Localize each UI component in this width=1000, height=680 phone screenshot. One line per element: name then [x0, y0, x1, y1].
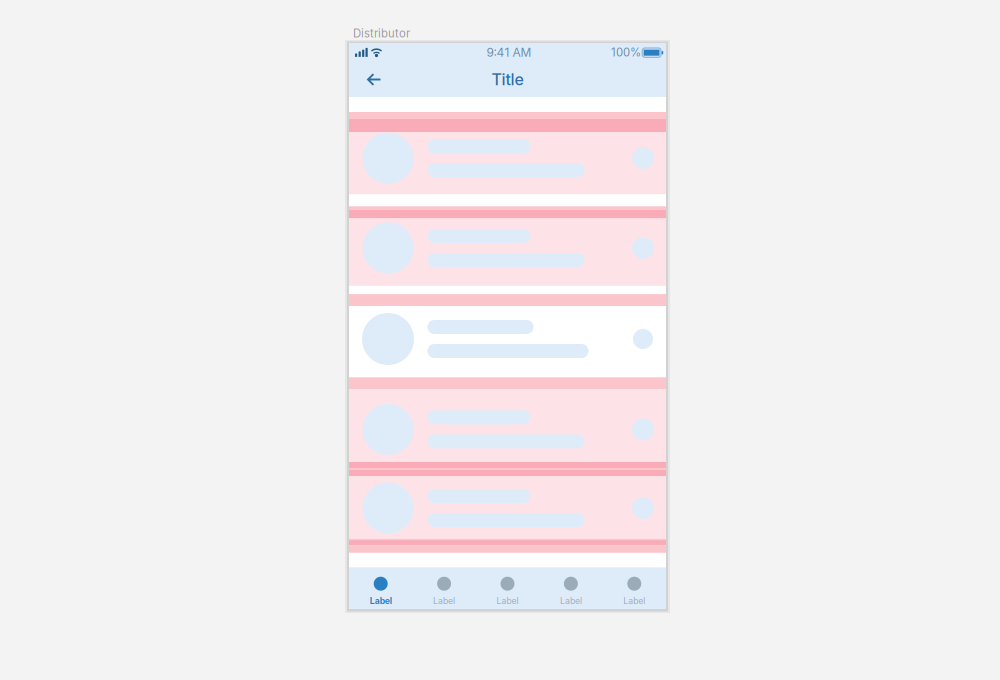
staticText: Distributor	[353, 27, 410, 40]
button[interactable]: Label	[412, 568, 476, 609]
staticText: Label	[496, 596, 518, 606]
staticText: Label	[623, 596, 645, 606]
button[interactable]: List item	[349, 469, 666, 539]
staticText: 9:41 AM	[486, 45, 531, 60]
button[interactable]: Label	[539, 568, 603, 609]
staticText: 100%	[611, 46, 641, 59]
staticText: Label	[433, 596, 455, 606]
button[interactable]: Label	[603, 568, 666, 609]
staticText: Title	[491, 70, 523, 89]
button[interactable]: Label	[476, 568, 539, 609]
button[interactable]: List item	[349, 112, 666, 194]
button[interactable]: List item	[349, 206, 666, 286]
button[interactable]: List item	[349, 377, 666, 462]
button[interactable]: List item	[349, 294, 666, 377]
button[interactable]: Label	[349, 568, 412, 609]
button[interactable]: Back	[361, 59, 401, 99]
staticText: Label	[560, 596, 582, 606]
staticText: Label	[370, 596, 392, 606]
